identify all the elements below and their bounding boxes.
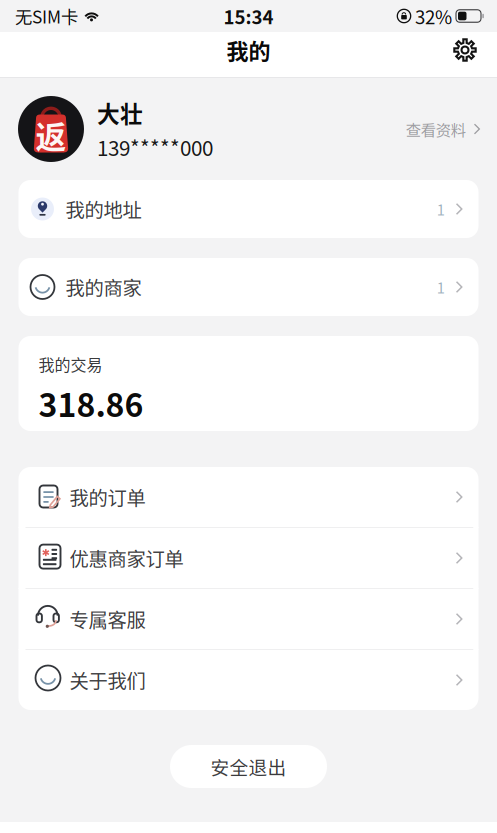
button[interactable]: 专属客服 xyxy=(18,589,478,649)
staticText: 1 xyxy=(437,276,445,298)
staticText: 139*****000 xyxy=(97,132,213,162)
staticText: 安全退出 xyxy=(210,753,286,780)
button[interactable]: 优惠商家订单 xyxy=(18,528,478,588)
staticText: 318.86 xyxy=(38,380,143,426)
button[interactable]: 关于我们 xyxy=(18,650,478,710)
staticText: 查看资料 xyxy=(406,118,466,140)
staticText: 优惠商家订单 xyxy=(69,544,183,572)
staticText: 1 xyxy=(437,198,445,220)
staticText: 我的商家 xyxy=(65,273,141,301)
staticText: 15:34 xyxy=(223,2,273,29)
staticText: 我的 xyxy=(226,34,270,66)
button[interactable]: 返 xyxy=(0,78,497,180)
button[interactable]: Settings xyxy=(447,37,483,73)
staticText: 我的订单 xyxy=(69,483,145,511)
staticText: 专属客服 xyxy=(69,605,145,633)
staticText: 返 xyxy=(35,113,66,157)
staticText: 32% xyxy=(415,2,452,29)
staticText: 无SIM卡 xyxy=(15,3,78,29)
button[interactable]: 我的地址 xyxy=(18,180,478,238)
staticText: 我的地址 xyxy=(65,195,141,223)
button[interactable]: 我的订单 xyxy=(18,467,478,527)
button[interactable]: 安全退出 xyxy=(170,745,327,788)
staticText: 大壮 xyxy=(97,96,143,129)
button[interactable]: 我的商家 xyxy=(18,258,478,316)
staticText: 关于我们 xyxy=(69,666,145,694)
staticText: 我的交易 xyxy=(38,352,102,376)
